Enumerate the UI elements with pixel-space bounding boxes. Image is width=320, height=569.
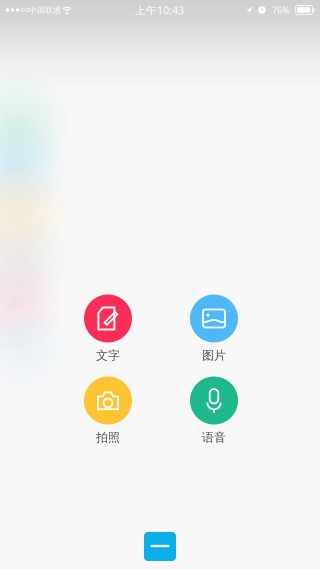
button[interactable]: 图片 [160,294,266,362]
button[interactable]: 语音 [160,376,266,444]
button[interactable]: Collapse panel [144,532,176,561]
staticText: 语音 [202,430,226,445]
staticText: 上午10:43 [135,3,184,17]
staticText: 拍照 [96,430,120,445]
staticText: 文字 [96,348,120,363]
button[interactable]: 拍照 [54,376,160,444]
button[interactable]: 文字 [54,294,160,362]
staticText: 76% [272,4,290,16]
staticText: 图片 [202,348,226,363]
staticText: 中国联通 [29,5,61,15]
